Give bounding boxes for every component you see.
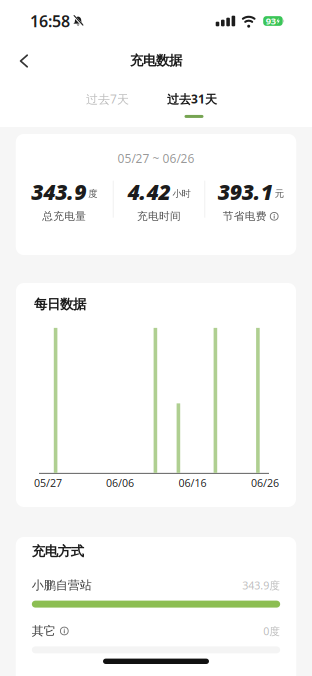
- staticText: 度: [88, 188, 97, 199]
- staticText: 过去31天: [167, 91, 217, 107]
- staticText: 每日数据: [34, 296, 86, 312]
- staticText: 343.9: [31, 177, 86, 206]
- staticText: 4.42: [127, 177, 170, 206]
- staticText: 393.1: [218, 177, 273, 206]
- staticText: 小鹏自营站: [32, 578, 92, 593]
- staticText: 93: [266, 15, 276, 27]
- button[interactable]: Back: [0, 38, 41, 84]
- button[interactable]: 过去31天: [167, 79, 217, 118]
- button[interactable]: 过去7天: [86, 79, 129, 107]
- button[interactable]: About saved cost: [270, 212, 279, 221]
- staticText: 06/06: [106, 476, 134, 490]
- staticText: 节省电费: [223, 210, 267, 223]
- staticText: 343.9度: [242, 578, 280, 592]
- staticText: 05/27 ~ 06/26: [117, 150, 194, 166]
- staticText: 过去7天: [86, 91, 129, 107]
- staticText: 05/27: [34, 476, 62, 490]
- button[interactable]: About other charging: [60, 626, 69, 635]
- staticText: 06/16: [178, 476, 206, 490]
- staticText: 0度: [263, 624, 280, 638]
- staticText: 充电时间: [137, 210, 181, 223]
- staticText: 总充电量: [42, 210, 86, 223]
- staticText: 元: [275, 188, 284, 199]
- staticText: 充电数据: [130, 52, 182, 69]
- staticText: 充电方式: [32, 543, 84, 559]
- staticText: 16:58: [30, 10, 70, 32]
- staticText: 06/26: [251, 476, 279, 490]
- staticText: 小时: [172, 188, 190, 199]
- staticText: 其它: [32, 624, 56, 638]
